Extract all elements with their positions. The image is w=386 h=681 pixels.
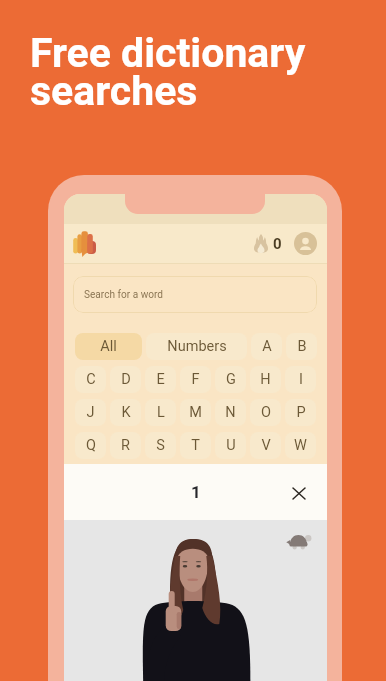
button[interactable]: All bbox=[75, 333, 142, 360]
staticText: B bbox=[297, 338, 307, 355]
button[interactable]: Search for a word bbox=[73, 276, 317, 313]
button[interactable]: E bbox=[145, 366, 176, 393]
button[interactable]: U bbox=[215, 432, 246, 459]
button[interactable]: B bbox=[286, 333, 317, 360]
button[interactable]: V bbox=[250, 432, 281, 459]
button[interactable]: C bbox=[75, 366, 106, 393]
button[interactable]: Q bbox=[75, 432, 106, 459]
button[interactable]: L bbox=[145, 399, 176, 426]
button[interactable]: S bbox=[145, 432, 176, 459]
staticText: U bbox=[226, 437, 236, 454]
staticText: Numbers bbox=[167, 338, 227, 355]
button[interactable]: H bbox=[250, 366, 281, 393]
button[interactable]: M bbox=[180, 399, 211, 426]
staticText: H bbox=[260, 371, 271, 388]
button[interactable]: W bbox=[285, 432, 316, 459]
staticText: E bbox=[156, 371, 165, 388]
button[interactable]: G bbox=[215, 366, 246, 393]
staticText: S bbox=[156, 437, 165, 454]
button[interactable]: Close bbox=[288, 482, 310, 504]
button[interactable]: T bbox=[180, 432, 211, 459]
button[interactable]: K bbox=[110, 399, 141, 426]
button[interactable]: Profile bbox=[294, 232, 317, 255]
button[interactable]: O bbox=[250, 399, 281, 426]
button[interactable]: Streak count bbox=[254, 233, 282, 254]
button[interactable]: P bbox=[285, 399, 316, 426]
staticText: P bbox=[296, 404, 306, 421]
staticText: O bbox=[261, 404, 271, 421]
staticText: C bbox=[86, 371, 96, 388]
button[interactable]: Numbers bbox=[146, 333, 247, 360]
staticText: M bbox=[189, 404, 202, 421]
staticText: W bbox=[294, 437, 307, 454]
staticText: V bbox=[261, 437, 271, 454]
button[interactable]: I bbox=[285, 366, 316, 393]
button[interactable]: J bbox=[75, 399, 106, 426]
button[interactable]: App logo bbox=[73, 231, 96, 257]
staticText: Free dictionary searches bbox=[30, 29, 306, 115]
staticText: D bbox=[121, 371, 131, 388]
button[interactable]: Slow motion bbox=[284, 531, 312, 551]
staticText: G bbox=[226, 371, 236, 388]
staticText: F bbox=[191, 371, 200, 388]
button[interactable]: N bbox=[215, 399, 246, 426]
button[interactable]: R bbox=[110, 432, 141, 459]
staticText: N bbox=[225, 404, 236, 421]
button[interactable]: A bbox=[251, 333, 282, 360]
staticText: Search for a word bbox=[84, 289, 164, 301]
staticText: A bbox=[262, 338, 272, 355]
staticText: I bbox=[299, 371, 303, 388]
staticText: R bbox=[121, 437, 130, 454]
button[interactable]: D bbox=[110, 366, 141, 393]
staticText: K bbox=[121, 404, 131, 421]
staticText: J bbox=[86, 404, 95, 421]
staticText: All bbox=[100, 338, 117, 355]
staticText: T bbox=[191, 437, 200, 454]
staticText: L bbox=[157, 404, 165, 421]
staticText: 0 bbox=[273, 235, 282, 253]
button[interactable]: F bbox=[180, 366, 211, 393]
staticText: Q bbox=[86, 437, 96, 454]
staticText: 1 bbox=[191, 482, 201, 502]
